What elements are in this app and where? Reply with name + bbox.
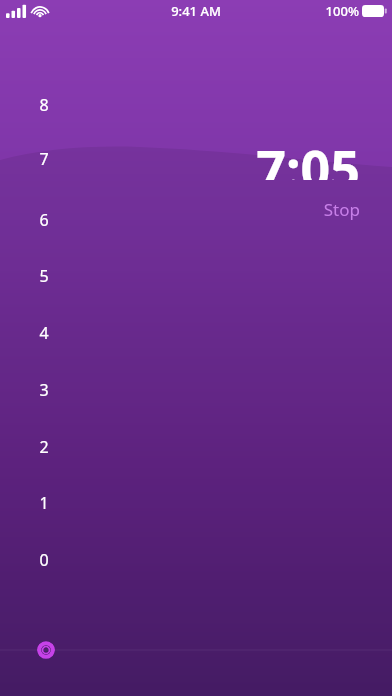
staticText: 5	[39, 265, 49, 285]
staticText: 8	[39, 94, 49, 114]
staticText: 9:41 AM	[171, 2, 221, 20]
staticText: 4	[39, 322, 49, 342]
button[interactable]: 8	[30, 94, 58, 114]
staticText: 7:05	[256, 132, 360, 180]
button[interactable]: 6	[30, 209, 58, 229]
staticText: 2	[39, 436, 49, 456]
staticText: Stop	[323, 198, 360, 221]
button[interactable]: Settings	[30, 634, 62, 666]
staticText: 1	[39, 492, 49, 512]
button[interactable]: 0	[30, 549, 58, 569]
button[interactable]: 5	[30, 265, 58, 285]
button[interactable]: 1	[30, 492, 58, 512]
button[interactable]: 3	[30, 379, 58, 399]
staticText: 3	[39, 379, 49, 399]
staticText: 0	[39, 549, 49, 569]
staticText: 100%	[325, 2, 359, 20]
staticText: 6	[39, 209, 49, 229]
staticText: 7	[39, 148, 49, 168]
button[interactable]: 2	[30, 436, 58, 456]
button[interactable]: Stop	[270, 196, 360, 222]
button[interactable]: 4	[30, 322, 58, 342]
button[interactable]: 7	[30, 148, 58, 168]
